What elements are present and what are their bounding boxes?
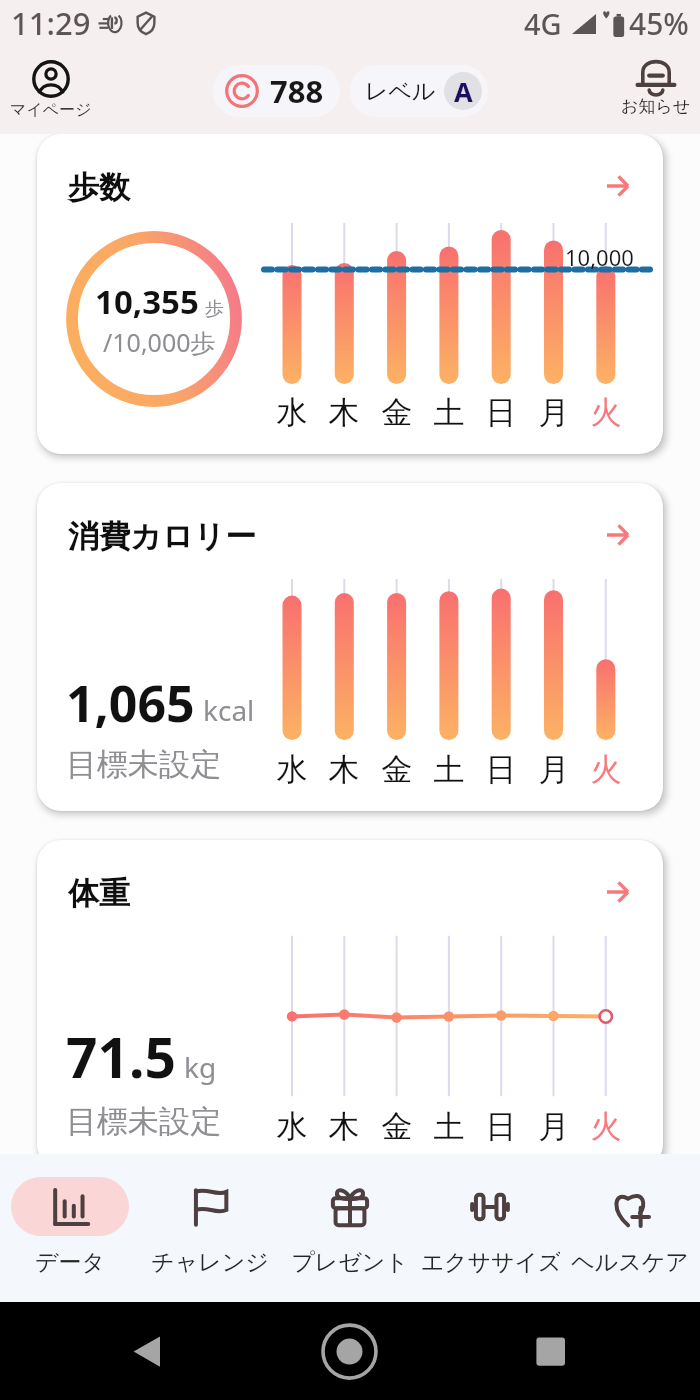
staticText: 71.5 xyxy=(66,1019,176,1094)
staticText: 月 xyxy=(534,393,574,432)
staticText: 金 xyxy=(377,393,417,432)
button[interactable]: マイページ xyxy=(4,60,98,120)
button[interactable]: 歩数 xyxy=(37,134,663,454)
button[interactable]: ヘルスケア xyxy=(560,1154,700,1302)
staticText: 1,065 xyxy=(66,669,195,737)
button[interactable]: プレゼント xyxy=(280,1154,420,1302)
staticText: 月 xyxy=(534,750,574,789)
staticText: ヘルスケア xyxy=(560,1248,700,1277)
staticText: 目標未設定 xyxy=(66,1102,221,1141)
staticText: 月 xyxy=(534,1107,574,1146)
staticText: 木 xyxy=(324,393,364,432)
button[interactable]: お知らせ xyxy=(615,57,697,117)
staticText: 11:29 xyxy=(11,2,91,44)
staticText: 金 xyxy=(377,750,417,789)
staticText: kcal xyxy=(203,691,255,729)
button[interactable]: 消費カロリー xyxy=(37,483,663,811)
staticText: レベル xyxy=(365,77,436,106)
button[interactable]: エクササイズ xyxy=(420,1154,560,1302)
button[interactable]: レベル xyxy=(350,65,488,117)
staticText: 歩 xyxy=(205,297,224,321)
staticText: 水 xyxy=(272,1107,312,1146)
staticText: データ xyxy=(0,1248,140,1277)
staticText: チャレンジ xyxy=(140,1248,280,1277)
staticText: A xyxy=(454,73,473,110)
staticText: 土 xyxy=(429,393,469,432)
staticText: 木 xyxy=(324,750,364,789)
staticText: お知らせ xyxy=(621,96,691,117)
other: システムナビゲーション xyxy=(0,1302,700,1400)
staticText: 木 xyxy=(324,1107,364,1146)
staticText: 4G xyxy=(524,4,562,43)
staticText: 10,000 xyxy=(565,242,634,272)
staticText: 水 xyxy=(272,750,312,789)
staticText: 土 xyxy=(429,750,469,789)
staticText: 788 xyxy=(270,70,324,112)
staticText: 歩数 xyxy=(68,168,130,207)
staticText: プレゼント xyxy=(280,1248,420,1277)
button[interactable]: チャレンジ xyxy=(140,1154,280,1302)
button[interactable]: 詳細を見る xyxy=(597,872,637,912)
button[interactable]: 体重 xyxy=(37,840,663,1168)
staticText: 日 xyxy=(481,393,521,432)
staticText: 火 xyxy=(586,393,626,432)
staticText: /10,000歩 xyxy=(103,325,216,359)
staticText: 日 xyxy=(481,750,521,789)
button[interactable]: 詳細を見る xyxy=(597,166,637,206)
staticText: 消費カロリー xyxy=(68,517,257,556)
staticText: 火 xyxy=(586,1107,626,1146)
staticText: 目標未設定 xyxy=(66,745,221,784)
staticText: エクササイズ xyxy=(420,1248,560,1277)
staticText: kg xyxy=(184,1048,217,1086)
staticText: 水 xyxy=(272,393,312,432)
staticText: 体重 xyxy=(68,874,130,913)
staticText: 45% xyxy=(629,3,689,44)
staticText: 日 xyxy=(481,1107,521,1146)
staticText: マイページ xyxy=(10,100,92,120)
staticText: 火 xyxy=(586,750,626,789)
button[interactable]: データ xyxy=(0,1154,140,1302)
staticText: 金 xyxy=(377,1107,417,1146)
staticText: 土 xyxy=(429,1107,469,1146)
staticText: 10,355 xyxy=(95,279,199,324)
button[interactable]: 788 xyxy=(213,65,340,117)
button[interactable]: 詳細を見る xyxy=(597,515,637,555)
